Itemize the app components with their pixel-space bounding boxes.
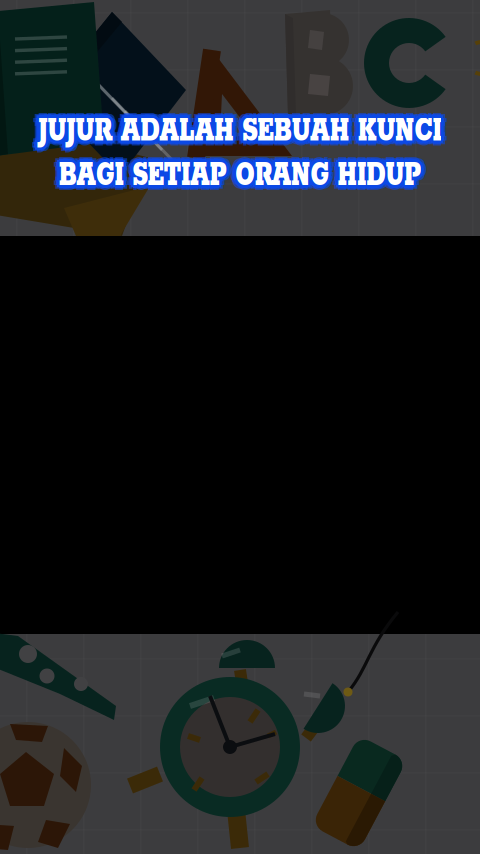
- staticText: JUJUR ADALAH SEBUAH KUNCI: [0, 108, 480, 150]
- staticText: JUJUR ADALAH SEBUAH KUNCI: [0, 110, 480, 152]
- staticText: BAGI SETIAP ORANG HIDUP: [0, 151, 480, 193]
- staticText: BAGI SETIAP ORANG HIDUP: [0, 157, 480, 199]
- staticText: JUJUR ADALAH SEBUAH KUNCI: [0, 112, 480, 155]
- staticText: BAGI SETIAP ORANG HIDUP: [0, 154, 480, 197]
- staticText: JUJUR ADALAH SEBUAH KUNCI: [0, 110, 480, 152]
- staticText: BAGI SETIAP ORANG HIDUP: [0, 151, 480, 194]
- staticText: JUJUR ADALAH SEBUAH KUNCI: [0, 110, 480, 152]
- staticText: BAGI SETIAP ORANG HIDUP: [0, 158, 480, 201]
- staticText: JUJUR ADALAH SEBUAH KUNCI: [0, 113, 480, 155]
- staticText: BAGI SETIAP ORANG HIDUP: [0, 154, 480, 197]
- staticText: JUJUR ADALAH SEBUAH KUNCI: [0, 105, 480, 147]
- staticText: JUJUR ADALAH SEBUAH KUNCI: [0, 107, 480, 149]
- staticText: BAGI SETIAP ORANG HIDUP: [0, 158, 480, 201]
- staticText: BAGI SETIAP ORANG HIDUP: [0, 154, 480, 197]
- staticText: BAGI SETIAP ORANG HIDUP: [0, 154, 480, 197]
- staticText: BAGI SETIAP ORANG HIDUP: [0, 157, 480, 199]
- staticText: JUJUR ADALAH SEBUAH KUNCI: [0, 114, 480, 156]
- staticText: BAGI SETIAP ORANG HIDUP: [0, 151, 480, 193]
- staticText: JUJUR ADALAH SEBUAH KUNCI: [0, 114, 480, 156]
- staticText: JUJUR ADALAH SEBUAH KUNCI: [0, 110, 480, 152]
- staticText: JUJUR ADALAH SEBUAH KUNCI: [0, 110, 480, 152]
- staticText: BAGI SETIAP ORANG HIDUP: [0, 152, 480, 195]
- staticText: BAGI SETIAP ORANG HIDUP: [0, 159, 480, 202]
- staticText: BAGI SETIAP ORANG HIDUP: [0, 149, 480, 192]
- staticText: JUJUR ADALAH SEBUAH KUNCI: [0, 106, 480, 149]
- staticText: JUJUR ADALAH SEBUAH KUNCI: [0, 106, 480, 149]
- staticText: BAGI SETIAP ORANG HIDUP: [0, 152, 480, 195]
- staticText: JUJUR ADALAH SEBUAH KUNCI: [0, 115, 480, 157]
- staticText: JUJUR ADALAH SEBUAH KUNCI: [0, 108, 480, 150]
- staticText: BAGI SETIAP ORANG HIDUP: [0, 157, 480, 200]
- staticText: BAGI SETIAP ORANG HIDUP: [0, 154, 480, 197]
- staticText: JUJUR ADALAH SEBUAH KUNCI: [0, 112, 480, 155]
